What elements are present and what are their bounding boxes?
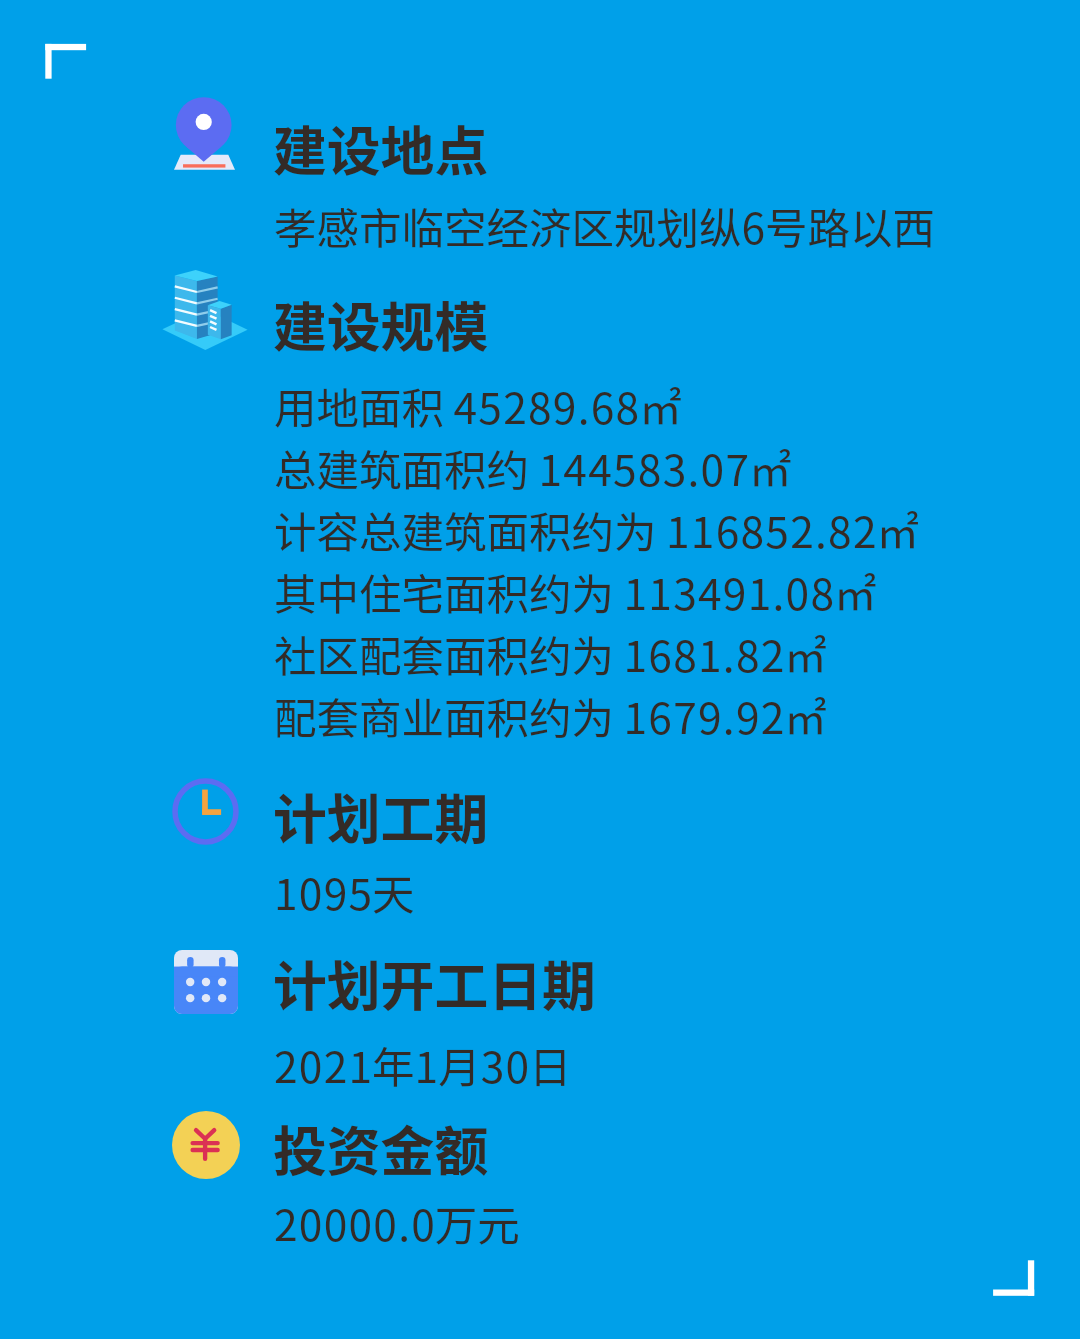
staticText: 计划开工日期 xyxy=(273,944,596,1022)
staticText: 2021年1月30日 xyxy=(274,1034,572,1096)
button[interactable]: 建设地点 xyxy=(174,97,235,170)
button[interactable]: 建设规模 xyxy=(162,270,248,350)
staticText: 1095天 xyxy=(274,861,415,923)
staticText: 计划工期 xyxy=(273,777,489,855)
staticText: 建设规模 xyxy=(273,285,489,363)
staticText: 总建筑面积约 144583.07㎡ xyxy=(274,437,792,499)
staticText: 计容总建筑面积约为 116852.82㎡ xyxy=(274,499,920,561)
button[interactable]: 计划开工日期 xyxy=(174,950,238,1014)
staticText: 其中住宅面积约为 113491.08㎡ xyxy=(274,561,877,623)
button[interactable]: 计划工期 xyxy=(172,778,239,845)
staticText: 配套商业面积约为 1679.92㎡ xyxy=(274,685,827,747)
staticText: 20000.0万元 xyxy=(274,1192,520,1254)
staticText: 投资金额 xyxy=(273,1109,489,1187)
staticText: 孝感市临空经济区规划纵6号路以西 xyxy=(274,195,936,257)
staticText: 用地面积 45289.68㎡ xyxy=(274,375,682,437)
button[interactable]: 投资金额 xyxy=(172,1111,240,1179)
staticText: 建设地点 xyxy=(273,109,489,187)
staticText: 社区配套面积约为 1681.82㎡ xyxy=(274,623,827,685)
